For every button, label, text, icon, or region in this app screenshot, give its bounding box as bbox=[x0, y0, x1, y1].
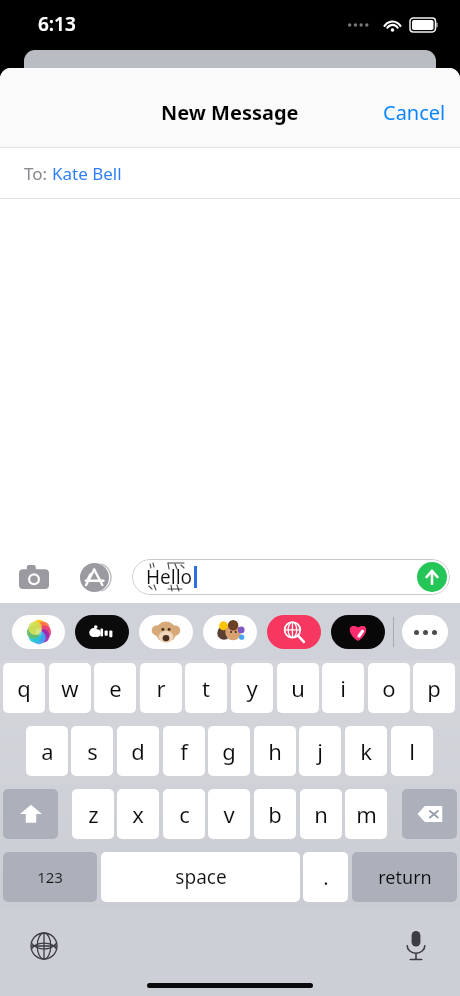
staticText: i bbox=[340, 673, 346, 703]
staticText: x bbox=[132, 799, 144, 829]
staticText: j bbox=[317, 736, 323, 766]
button[interactable]: l bbox=[391, 726, 433, 776]
button[interactable]: Send bbox=[417, 562, 447, 592]
button[interactable]: z bbox=[72, 789, 114, 839]
staticText: Hello bbox=[146, 564, 193, 590]
button[interactable]: v bbox=[208, 789, 250, 839]
button[interactable]: e bbox=[94, 663, 136, 713]
staticText: k bbox=[360, 736, 372, 766]
button[interactable]: Photos bbox=[12, 615, 65, 649]
staticText: Kate Bell bbox=[52, 162, 122, 185]
button[interactable]: Change keyboard bbox=[22, 924, 66, 968]
button[interactable]: Hello bbox=[132, 559, 450, 595]
staticText: r bbox=[156, 673, 166, 703]
staticText: 123 bbox=[37, 867, 63, 887]
button[interactable]: App Store bbox=[74, 557, 114, 597]
staticText: z bbox=[88, 799, 99, 829]
button[interactable]: c bbox=[163, 789, 205, 839]
button[interactable]: Dictate bbox=[394, 924, 438, 968]
button[interactable]: Memoji monkey bbox=[139, 615, 193, 649]
staticText: Cancel bbox=[383, 99, 446, 126]
button[interactable]: space bbox=[101, 852, 300, 902]
button[interactable]: Images bbox=[267, 615, 321, 649]
button[interactable]: q bbox=[3, 663, 45, 713]
button[interactable]: Shift bbox=[3, 789, 58, 839]
button[interactable]: Memoji bbox=[203, 615, 257, 649]
staticText: u bbox=[291, 673, 305, 703]
button[interactable]: i bbox=[322, 663, 364, 713]
button[interactable]: f bbox=[163, 726, 205, 776]
button[interactable]: a bbox=[26, 726, 68, 776]
staticText: h bbox=[268, 736, 282, 766]
button[interactable]: s bbox=[71, 726, 113, 776]
button[interactable]: u bbox=[277, 663, 319, 713]
staticText: w bbox=[61, 673, 79, 703]
button[interactable]: j bbox=[299, 726, 341, 776]
button[interactable]: t bbox=[185, 663, 227, 713]
staticText: m bbox=[356, 799, 377, 829]
button[interactable]: Apple Pay bbox=[75, 615, 129, 649]
button[interactable]: To: bbox=[0, 148, 460, 199]
staticText: q bbox=[17, 673, 31, 703]
button[interactable]: y bbox=[231, 663, 273, 713]
button[interactable]: return bbox=[352, 852, 457, 902]
button[interactable]: n bbox=[300, 789, 342, 839]
staticText: To: bbox=[24, 162, 52, 185]
staticText: 6:13 bbox=[38, 11, 76, 37]
button[interactable]: x bbox=[117, 789, 159, 839]
staticText: n bbox=[314, 799, 328, 829]
staticText: b bbox=[268, 799, 282, 829]
staticText: y bbox=[246, 673, 258, 703]
button[interactable]: r bbox=[140, 663, 182, 713]
button[interactable]: Digital Touch bbox=[331, 615, 385, 649]
button[interactable]: m bbox=[345, 789, 387, 839]
button[interactable]: d bbox=[117, 726, 159, 776]
staticText: d bbox=[131, 736, 145, 766]
staticText: New Message bbox=[161, 99, 299, 126]
staticText: return bbox=[378, 865, 432, 890]
staticText: e bbox=[109, 673, 122, 703]
staticText: space bbox=[175, 864, 227, 890]
button[interactable]: g bbox=[208, 726, 250, 776]
staticText: t bbox=[202, 673, 210, 703]
staticText: o bbox=[382, 673, 396, 703]
button[interactable]: Camera bbox=[14, 557, 54, 597]
button[interactable]: w bbox=[49, 663, 91, 713]
button[interactable]: p bbox=[413, 663, 455, 713]
staticText: g bbox=[222, 736, 236, 766]
staticText: a bbox=[41, 736, 54, 766]
button[interactable]: k bbox=[345, 726, 387, 776]
staticText: l bbox=[409, 736, 415, 766]
staticText: v bbox=[223, 799, 235, 829]
button[interactable]: More bbox=[402, 615, 448, 649]
button[interactable]: . bbox=[303, 852, 348, 902]
staticText: p bbox=[427, 673, 441, 703]
staticText: c bbox=[179, 799, 190, 829]
staticText: f bbox=[180, 736, 188, 766]
button[interactable]: h bbox=[254, 726, 296, 776]
staticText: . bbox=[323, 864, 329, 891]
button[interactable]: o bbox=[368, 663, 410, 713]
button[interactable]: b bbox=[254, 789, 296, 839]
button[interactable]: Backspace bbox=[402, 789, 457, 839]
button[interactable]: 123 bbox=[3, 852, 97, 902]
staticText: s bbox=[87, 736, 98, 766]
button[interactable]: Cancel bbox=[369, 91, 460, 134]
